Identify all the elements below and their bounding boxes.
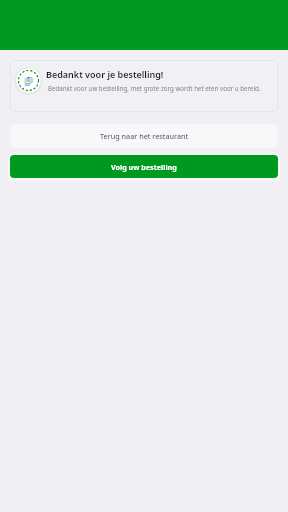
staticText: Volg uw bestelling [111, 162, 177, 172]
other: Bestelstatus [16, 68, 41, 93]
staticText: Terug naar het restaurant [100, 131, 189, 141]
button[interactable]: Terug naar het restaurant [10, 124, 278, 148]
staticText: Bedankt voor je bestelling! [46, 68, 164, 80]
staticText: Bedankt voor uw bestelling, met grote zo… [48, 84, 261, 92]
button[interactable]: Bestelstatus [10, 60, 278, 112]
button[interactable]: Volg uw bestelling [10, 155, 278, 178]
